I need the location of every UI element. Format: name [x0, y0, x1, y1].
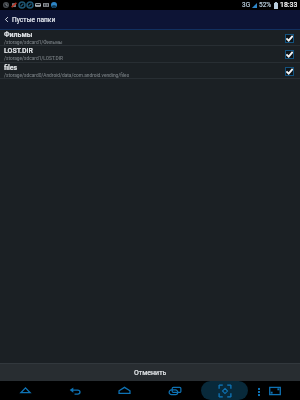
- button[interactable]: Фильмы: [0, 30, 300, 46]
- staticText: Отменить: [134, 369, 167, 377]
- button[interactable]: Home: [108, 381, 140, 400]
- button[interactable]: Screenshot: [209, 381, 241, 400]
- staticText: /storage/sdcard0/Android/data/com.androi…: [4, 73, 130, 79]
- staticText: 52%: [259, 1, 272, 9]
- button[interactable]: Menu: [9, 381, 41, 400]
- staticText: files: [4, 64, 18, 72]
- staticText: /storage/sdcard1/Фильмы: [4, 40, 63, 46]
- staticText: /storage/sdcard1/LOST.DIR: [4, 56, 63, 62]
- staticText: 18:33: [280, 1, 298, 9]
- button[interactable]: Back: [59, 381, 91, 400]
- staticText: Фильмы: [4, 31, 33, 39]
- button[interactable]: LOST.DIR: [0, 46, 300, 63]
- button[interactable]: Back: [3, 10, 56, 29]
- button[interactable]: Recents: [159, 381, 191, 400]
- button[interactable]: Multi window: [259, 381, 291, 400]
- staticText: LOST.DIR: [4, 47, 33, 55]
- button[interactable]: files: [0, 63, 300, 79]
- staticText: 3G: [242, 1, 251, 9]
- button[interactable]: Отменить: [0, 364, 300, 381]
- staticText: Пустые папки: [12, 16, 56, 24]
- other: Back: [3, 16, 10, 23]
- button[interactable]: Screenshot: [201, 381, 248, 400]
- button[interactable]: More options: [243, 381, 275, 400]
